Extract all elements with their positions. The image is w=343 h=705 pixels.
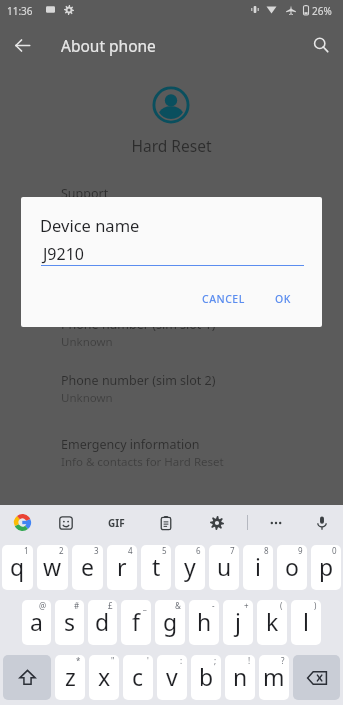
- button[interactable]: Voice input: [305, 505, 339, 540]
- staticText: 11:36: [7, 4, 33, 18]
- button[interactable]: Keyboard settings: [200, 505, 234, 540]
- staticText: e: [81, 551, 94, 582]
- staticText: v: [166, 661, 178, 692]
- staticText: 6: [196, 545, 201, 556]
- staticText: y: [184, 551, 196, 582]
- button[interactable]: m: [259, 655, 289, 700]
- staticText: i: [255, 551, 261, 582]
- button[interactable]: Search: [299, 23, 343, 67]
- staticText: (: [280, 600, 283, 611]
- button[interactable]: Backspace: [293, 655, 340, 700]
- button[interactable]: l: [291, 600, 321, 645]
- staticText: -: [212, 600, 215, 611]
- button[interactable]: f: [121, 600, 151, 645]
- button[interactable]: Phone number (sim slot 1): [0, 312, 343, 356]
- staticText: a: [30, 606, 43, 637]
- staticText: d: [95, 606, 110, 637]
- button[interactable]: GIF: [99, 505, 133, 540]
- staticText: p: [319, 551, 334, 582]
- button[interactable]: OK: [267, 283, 299, 315]
- staticText: ;: [214, 655, 217, 666]
- staticText: q: [10, 551, 25, 582]
- staticText: 3: [94, 545, 99, 556]
- staticText: k: [266, 606, 279, 637]
- staticText: o: [285, 551, 299, 582]
- button[interactable]: j: [223, 600, 253, 645]
- staticText: u: [217, 551, 232, 582]
- staticText: 26%: [312, 4, 332, 18]
- staticText: £: [108, 600, 113, 611]
- staticText: Hard Reset: [0, 135, 343, 156]
- staticText: f: [132, 606, 140, 637]
- staticText: +: [244, 600, 249, 611]
- staticText: h: [197, 606, 212, 637]
- staticText: b: [199, 661, 214, 692]
- button[interactable]: i: [243, 545, 273, 590]
- staticText: 0: [332, 545, 337, 556]
- button[interactable]: Support: [0, 181, 343, 208]
- staticText: t: [152, 551, 161, 582]
- staticText: 1: [24, 545, 29, 556]
- button[interactable]: g: [155, 600, 185, 645]
- button[interactable]: v: [157, 655, 187, 700]
- button[interactable]: x: [89, 655, 119, 700]
- staticText: x: [98, 661, 111, 692]
- button[interactable]: Clipboard: [149, 505, 183, 540]
- staticText: Phone number (sim slot 1): [61, 316, 216, 333]
- button[interactable]: h: [189, 600, 219, 645]
- button[interactable]: More options: [259, 505, 293, 540]
- staticText: ': [147, 655, 149, 666]
- button[interactable]: t: [141, 545, 171, 590]
- staticText: _: [143, 600, 147, 611]
- staticText: CANCEL: [202, 292, 245, 306]
- staticText: 4: [128, 545, 133, 556]
- staticText: l: [303, 606, 309, 637]
- staticText: j: [235, 606, 241, 637]
- button[interactable]: w: [37, 545, 68, 590]
- button[interactable]: a: [22, 600, 51, 645]
- staticText: m: [263, 661, 285, 692]
- staticText: Device name: [40, 214, 140, 236]
- button[interactable]: n: [225, 655, 255, 700]
- button[interactable]: Shift: [3, 655, 51, 700]
- staticText: @: [39, 600, 47, 611]
- button[interactable]: c: [123, 655, 153, 700]
- staticText: Info & contacts for Hard Reset: [61, 454, 224, 470]
- staticText: r: [117, 551, 127, 582]
- button[interactable]: CANCEL: [194, 283, 253, 315]
- button[interactable]: Phone number (sim slot 2): [0, 368, 343, 412]
- staticText: ): [314, 600, 317, 611]
- staticText: c: [132, 661, 144, 692]
- staticText: ": [111, 655, 115, 666]
- staticText: 2: [59, 545, 64, 556]
- staticText: 9: [298, 545, 303, 556]
- button[interactable]: b: [191, 655, 221, 700]
- staticText: g: [163, 606, 178, 637]
- staticText: &: [175, 600, 181, 611]
- button[interactable]: o: [277, 545, 307, 590]
- staticText: Emergency information: [61, 436, 200, 453]
- button[interactable]: u: [209, 545, 239, 590]
- button[interactable]: Navigate up: [0, 23, 44, 67]
- button[interactable]: q: [2, 545, 33, 590]
- staticText: z: [65, 661, 76, 692]
- staticText: Unknown: [61, 334, 113, 350]
- button[interactable]: y: [175, 545, 205, 590]
- button[interactable]: z: [55, 655, 85, 700]
- staticText: GIF: [108, 516, 125, 530]
- staticText: Phone number (sim slot 2): [61, 372, 216, 389]
- staticText: 7: [230, 545, 235, 556]
- button[interactable]: s: [55, 600, 84, 645]
- button[interactable]: Google search: [5, 505, 39, 540]
- staticText: n: [233, 661, 248, 692]
- staticText: 8: [264, 545, 269, 556]
- button[interactable]: k: [257, 600, 287, 645]
- button[interactable]: p: [311, 545, 341, 590]
- staticText: Support: [61, 185, 109, 202]
- button[interactable]: Emergency information: [0, 432, 343, 476]
- button[interactable]: d: [88, 600, 117, 645]
- staticText: About phone: [61, 35, 156, 56]
- button[interactable]: e: [72, 545, 103, 590]
- button[interactable]: Stickers: [49, 505, 83, 540]
- button[interactable]: r: [107, 545, 137, 590]
